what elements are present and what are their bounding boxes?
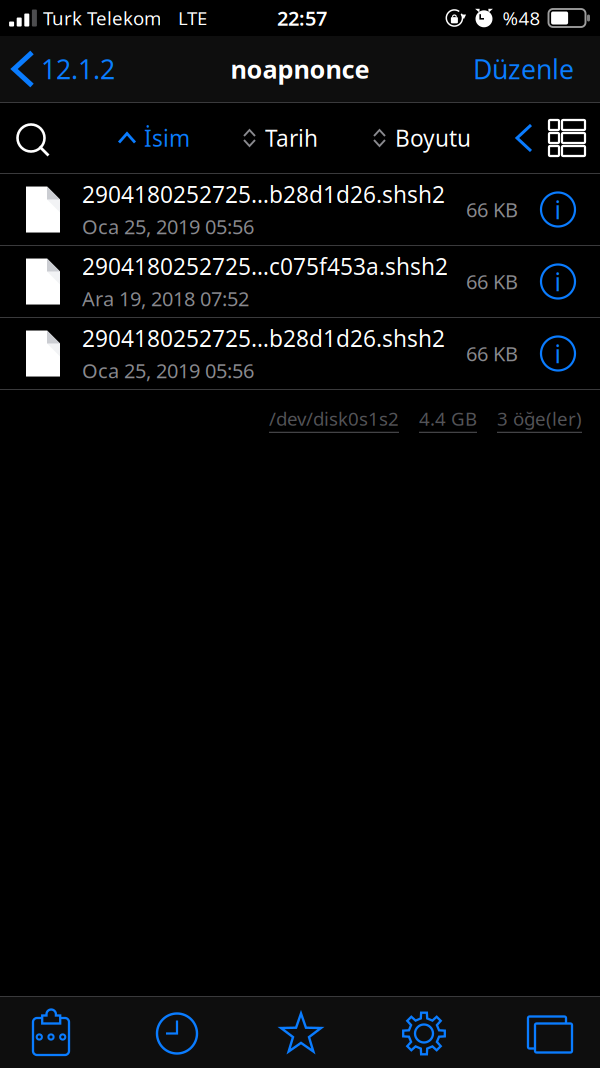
staticText: i (554, 193, 561, 226)
staticText: %48 (502, 6, 540, 30)
button[interactable]: 4.4 GB (419, 406, 477, 433)
staticText: 66 KB (466, 196, 518, 223)
staticText: Oca 25, 2019 05:56 (82, 357, 254, 384)
staticText: 4.4 GB (419, 406, 477, 431)
staticText: 2904180252725…b28d1d26.shsh2 (82, 179, 445, 209)
button[interactable]: Boyutu (374, 103, 515, 173)
staticText: 3 öğe(ler) (497, 406, 582, 431)
staticText: LTE (178, 6, 207, 30)
button[interactable]: 12.1.2 (0, 43, 115, 95)
staticText: İsim (144, 123, 190, 153)
staticText: 12.1.2 (41, 51, 115, 87)
staticText: /dev/disk0s1s2 (269, 406, 399, 431)
staticText: 2904180252725…c075f453a.shsh2 (82, 251, 448, 281)
staticText: noapnonce (230, 52, 369, 86)
staticText: Turk Telekom (43, 6, 161, 30)
button[interactable]: 2904180252725…c075f453a.shsh2 (0, 246, 600, 317)
button[interactable]: Tarih (244, 103, 374, 173)
button[interactable]: Search (0, 103, 119, 173)
button[interactable]: İsim (119, 103, 244, 173)
staticText: Tarih (265, 123, 318, 153)
staticText: 2904180252725…b28d1d26.shsh2 (82, 323, 445, 353)
button[interactable]: /dev/disk0s1s2 (269, 406, 399, 433)
button[interactable]: Windows (480, 997, 600, 1068)
button[interactable]: Favorites (240, 997, 360, 1068)
staticText: 66 KB (466, 340, 518, 367)
staticText: Oca 25, 2019 05:56 (82, 213, 254, 240)
staticText: i (554, 265, 561, 298)
button[interactable]: Settings (360, 997, 480, 1068)
staticText: Düzenle (473, 51, 574, 87)
button[interactable]: 2904180252725…b28d1d26.shsh2 (0, 318, 600, 389)
staticText: 66 KB (466, 268, 518, 295)
button[interactable]: Previous (515, 103, 543, 173)
staticText: 22:57 (277, 5, 327, 31)
button[interactable]: View mode (543, 103, 600, 173)
button[interactable]: 2904180252725…b28d1d26.shsh2 (0, 174, 600, 245)
staticText: i (554, 337, 561, 370)
button[interactable]: 3 öğe(ler) (497, 406, 582, 433)
button[interactable]: Clipboard (0, 997, 120, 1068)
button[interactable]: Recents (120, 997, 240, 1068)
button[interactable]: Düzenle (473, 43, 600, 95)
staticText: Boyutu (395, 123, 471, 153)
staticText: Ara 19, 2018 07:52 (82, 285, 249, 312)
